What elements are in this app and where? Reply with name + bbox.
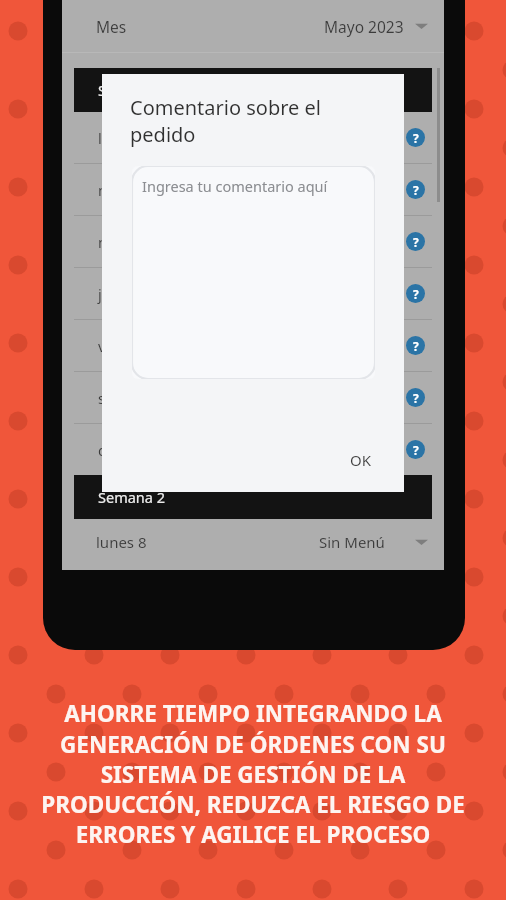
staticText: Semana 1 [98, 80, 165, 100]
staticText: lunes 8 [96, 532, 147, 552]
staticText: sábado 6 [98, 388, 160, 408]
staticText: ? [413, 286, 419, 302]
button[interactable]: Ayuda [406, 180, 425, 199]
staticText: AHORRE TIEMPO INTEGRANDO LA GENERACIÓN D… [24, 698, 482, 849]
button[interactable]: Semana 1 [74, 68, 432, 112]
staticText: Sin Menú [319, 532, 385, 552]
button[interactable]: domingo 7 [62, 424, 444, 475]
staticText: ? [413, 338, 419, 354]
button[interactable]: Ayuda [406, 128, 425, 147]
button[interactable]: Ayuda [406, 232, 425, 251]
staticText: Mes [96, 16, 127, 37]
button[interactable]: Ayuda [406, 388, 425, 407]
staticText: martes 2 [98, 180, 159, 200]
staticText: Semana 2 [98, 487, 165, 507]
staticText: viernes 5 [98, 336, 160, 356]
button[interactable]: martes 2 [62, 164, 444, 215]
staticText: jueves 4 [98, 284, 154, 304]
button[interactable]: lunes 1 [62, 112, 444, 163]
button[interactable]: Ayuda [406, 336, 425, 355]
button[interactable]: Mes [62, 0, 444, 52]
button[interactable]: Ingresa tu comentario aquí [132, 166, 375, 379]
staticText: ? [413, 182, 419, 198]
staticText: Mayo 2023 [324, 16, 404, 37]
button[interactable]: viernes 5 [62, 320, 444, 371]
staticText: ? [413, 442, 419, 458]
staticText: Ingresa tu comentario aquí [142, 176, 328, 196]
staticText: lunes 1 [98, 128, 147, 148]
button[interactable]: lunes 8 [62, 525, 444, 559]
staticText: ? [413, 390, 419, 406]
staticText: OK [350, 450, 372, 470]
staticText: miércoles 3 [98, 232, 176, 252]
button[interactable]: miércoles 3 [62, 216, 444, 267]
staticText: ? [413, 234, 419, 250]
staticText: ? [413, 130, 419, 146]
button[interactable]: OK [336, 442, 386, 478]
staticText: Comentario sobre el pedido [130, 94, 360, 148]
button[interactable]: Ayuda [406, 440, 425, 459]
button[interactable]: Ayuda [406, 284, 425, 303]
button[interactable]: jueves 4 [62, 268, 444, 319]
button[interactable]: Semana 2 [74, 475, 432, 519]
staticText: domingo 7 [98, 440, 172, 460]
button[interactable]: sábado 6 [62, 372, 444, 423]
